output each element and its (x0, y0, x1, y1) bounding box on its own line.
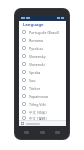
staticText: Türkce (29, 86, 41, 91)
staticText: 中文 (简体) (29, 110, 47, 115)
staticText: Suo (29, 78, 36, 83)
staticText: Slovensky (29, 54, 46, 59)
button[interactable]: Português (Brasil) (19, 28, 66, 36)
button[interactable]: 中文 (简体) (19, 108, 66, 116)
button[interactable]: Home (40, 131, 45, 134)
button[interactable]: Recents (55, 131, 60, 134)
button[interactable]: Slovenski (19, 60, 66, 68)
staticText: Romana (29, 38, 44, 43)
staticText: Sprska (29, 70, 41, 75)
staticText: Pycckuu (29, 46, 43, 51)
button[interactable]: Українська (19, 92, 66, 100)
staticText: Slovenski (29, 62, 45, 67)
button[interactable]: Menu (21, 122, 40, 125)
button[interactable]: Romana (19, 36, 66, 44)
button[interactable]: 中文 (繁體) (19, 116, 66, 120)
staticText: 中文 (繁體) (29, 116, 47, 120)
staticText: Language (23, 22, 44, 28)
staticText: Português (Brasil) (29, 30, 59, 35)
button[interactable]: Sprska (19, 68, 66, 76)
button[interactable]: Back (24, 131, 29, 134)
staticText: Tiếng Việt (29, 102, 46, 107)
button[interactable]: Slovensky (19, 52, 66, 60)
staticText: Українська (29, 94, 48, 99)
button[interactable]: Suo (19, 76, 66, 84)
button[interactable]: Türkce (19, 84, 66, 92)
button[interactable]: Pycckuu (19, 44, 66, 52)
button[interactable]: Tiếng Việt (19, 100, 66, 108)
